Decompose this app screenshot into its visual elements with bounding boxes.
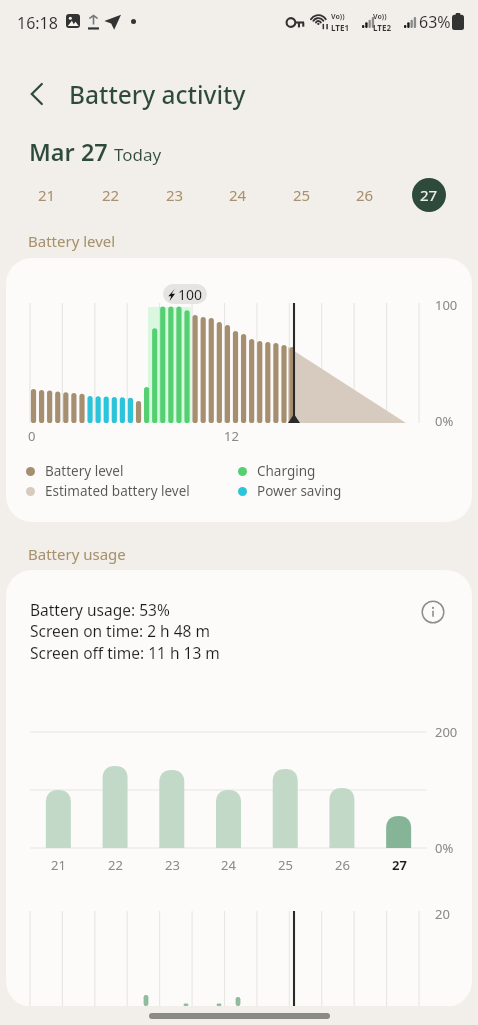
staticText: Today <box>114 143 162 166</box>
staticText: 12 <box>224 427 239 445</box>
staticText: 20 <box>435 905 450 923</box>
button[interactable]: 24 <box>221 178 255 212</box>
button[interactable]: 27 <box>412 178 446 212</box>
staticText: 100 <box>435 296 458 314</box>
staticText: Battery usage <box>28 544 126 564</box>
staticText: 24 <box>221 856 236 874</box>
staticText: LTE2 <box>373 22 391 33</box>
staticText: Mar 27 <box>29 136 108 168</box>
staticText: Battery usage: 53% Screen on time: 2 h 4… <box>30 599 220 664</box>
button[interactable]: 21 <box>30 178 64 212</box>
staticText: 63% <box>419 11 451 33</box>
staticText: 24 <box>229 185 247 205</box>
staticText: 200 <box>435 723 458 741</box>
button[interactable]: 23 <box>158 178 192 212</box>
button[interactable]: 26 <box>348 178 382 212</box>
button[interactable]: Info <box>419 598 447 626</box>
staticText: 0% <box>435 412 454 430</box>
staticText: Estimated battery level <box>45 482 190 500</box>
staticText: 26 <box>335 856 350 874</box>
button[interactable]: 22 <box>94 178 128 212</box>
staticText: Battery activity <box>69 78 246 111</box>
staticText: 22 <box>108 856 123 874</box>
staticText: 21 <box>38 185 56 205</box>
staticText: 21 <box>51 856 66 874</box>
staticText: Power saving <box>257 482 342 500</box>
staticText: 16:18 <box>17 12 58 34</box>
button[interactable]: Battery activity <box>69 78 246 111</box>
staticText: Vo)) <box>331 12 345 22</box>
staticText: 27 <box>420 185 438 205</box>
staticText: 25 <box>293 185 311 205</box>
staticText: Battery level <box>45 462 124 480</box>
staticText: 23 <box>166 185 184 205</box>
staticText: Charging <box>257 462 316 480</box>
staticText: 26 <box>356 185 374 205</box>
button[interactable]: Back <box>18 74 58 114</box>
button[interactable]: 25 <box>285 178 319 212</box>
staticText: 22 <box>102 185 120 205</box>
staticText: 25 <box>278 856 293 874</box>
staticText: Vo)) <box>373 12 387 22</box>
staticText: LTE1 <box>331 22 349 33</box>
staticText: 0% <box>435 839 454 857</box>
staticText: 0 <box>28 427 36 445</box>
staticText: 100 <box>178 285 203 304</box>
staticText: 23 <box>165 856 180 874</box>
staticText: Battery level <box>28 231 116 251</box>
staticText: 27 <box>392 856 407 874</box>
